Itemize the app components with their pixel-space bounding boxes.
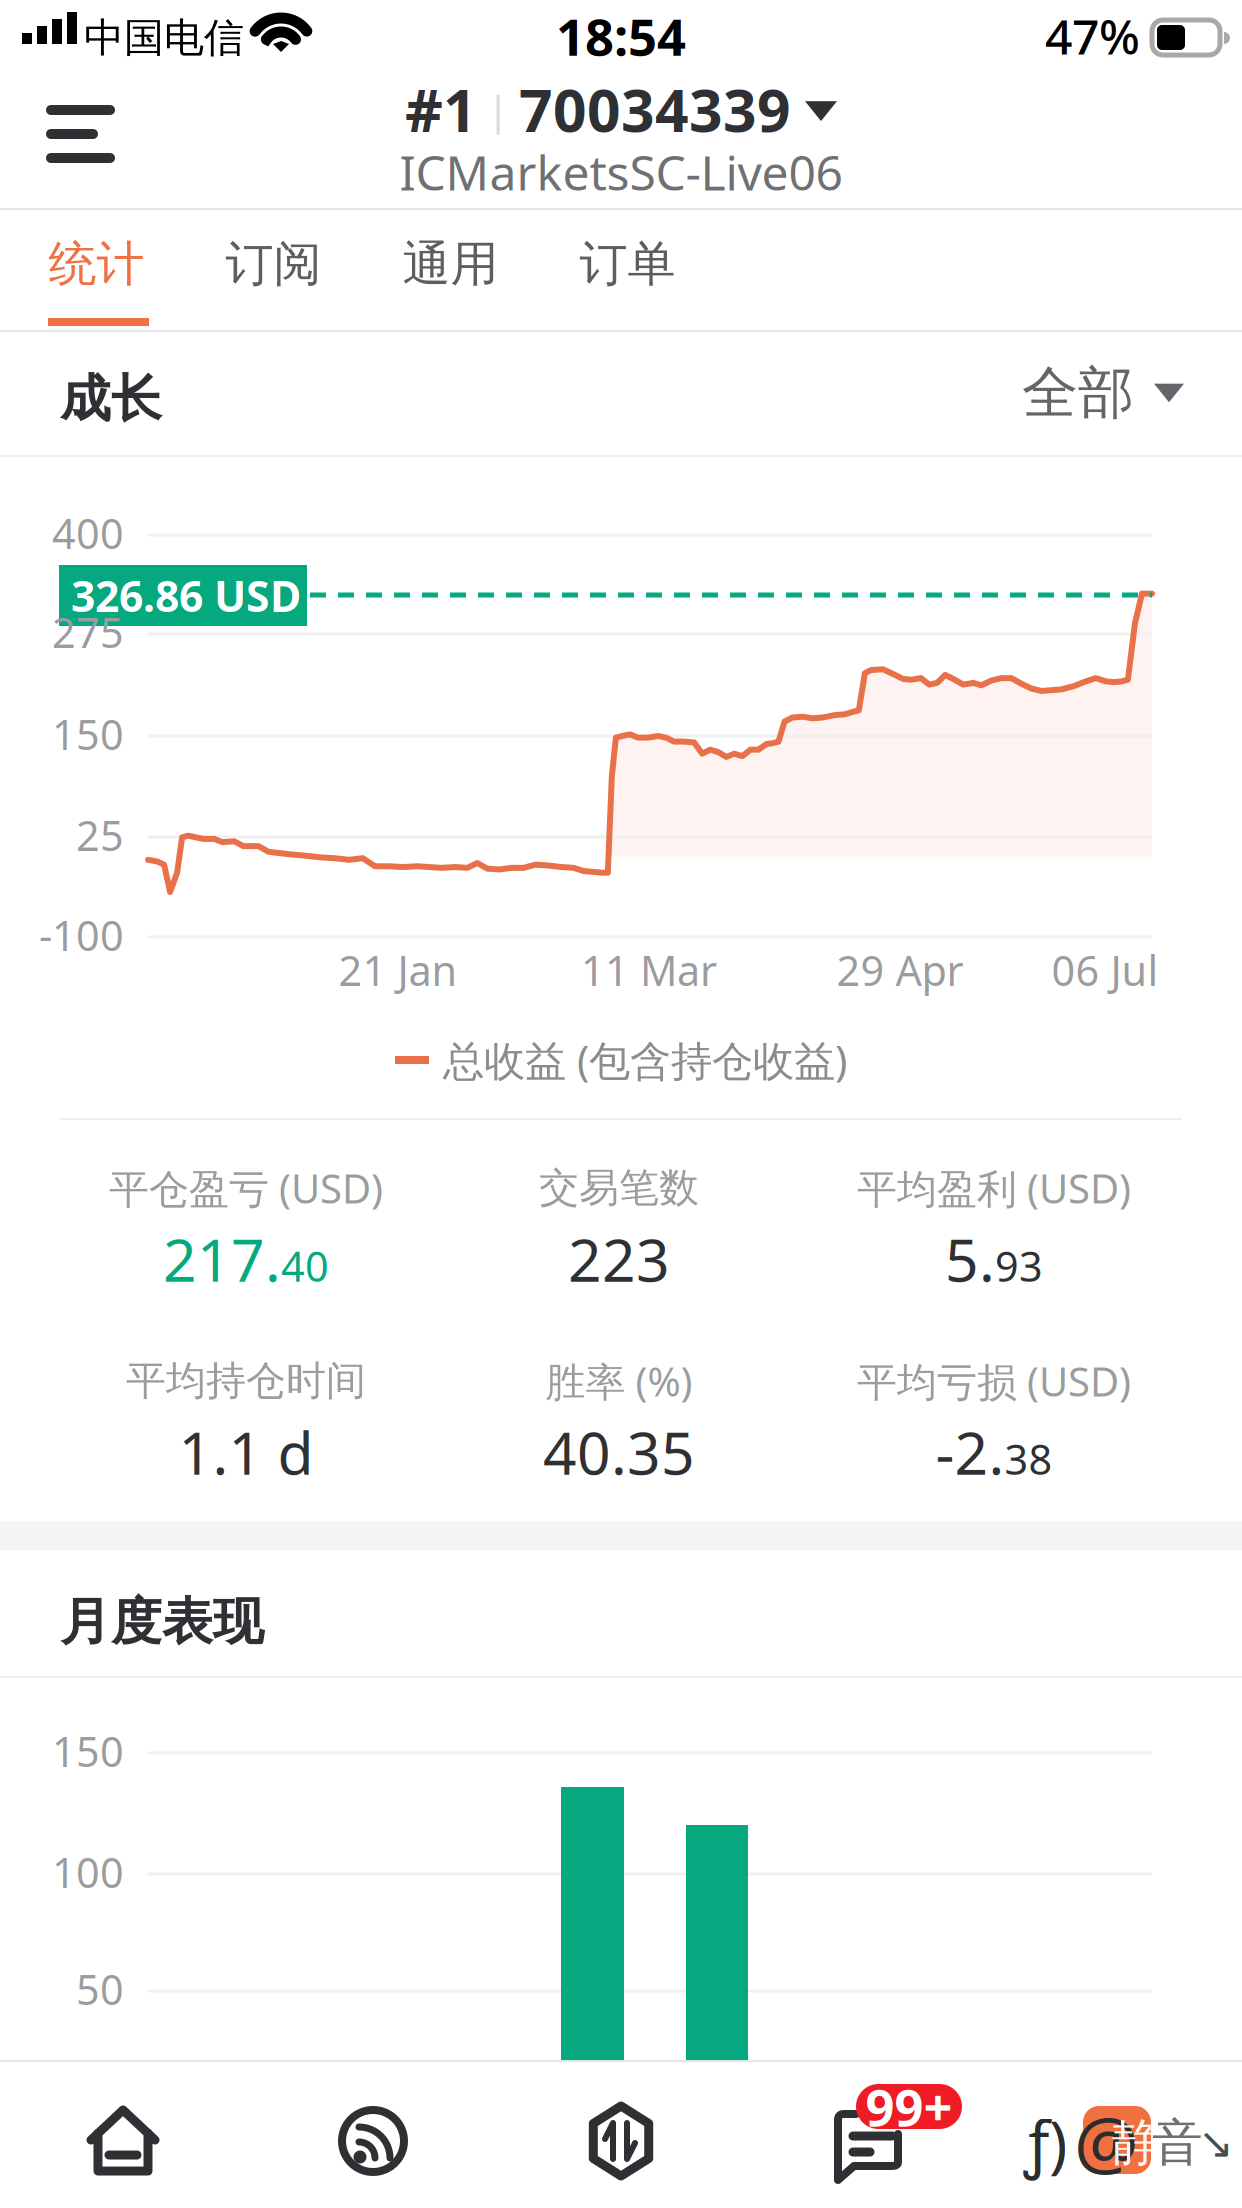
button[interactable]: Trade — [497, 2062, 745, 2208]
staticText: 1.1 d — [178, 1413, 313, 1491]
staticText: 223 — [568, 1220, 670, 1298]
staticText: -100 — [39, 908, 124, 962]
staticText: 平均持仓时间 — [126, 1356, 366, 1405]
staticText: 成长 — [60, 368, 162, 430]
staticText: 38 — [1004, 1431, 1052, 1486]
staticText: 静 — [1112, 2112, 1163, 2174]
staticText: 平均亏损 (USD) — [857, 1354, 1131, 1407]
staticText: 150 — [52, 1724, 124, 1778]
staticText: 11 Mar — [581, 943, 717, 997]
staticText: 275 — [52, 605, 124, 659]
staticText: 217. — [163, 1220, 281, 1298]
button[interactable]: 通用 — [362, 216, 539, 312]
staticText: #1 — [405, 70, 477, 148]
staticText: 47% — [1045, 4, 1140, 68]
button[interactable]: Messages — [745, 2062, 993, 2208]
button[interactable]: 统计 — [8, 216, 185, 312]
staticText: @ — [1074, 2093, 1139, 2189]
staticText: 50 — [76, 1962, 124, 2016]
button[interactable]: 订单 — [539, 216, 716, 312]
staticText: 5. — [945, 1220, 995, 1298]
staticText: 40 — [281, 1238, 329, 1293]
staticText: 平仓盈亏 (USD) — [109, 1161, 383, 1214]
staticText: -2. — [935, 1413, 1004, 1491]
staticText: | — [477, 83, 519, 136]
staticText: 29 Apr — [836, 943, 963, 997]
staticText: 订单 — [579, 234, 675, 293]
staticText: 订阅 — [225, 234, 321, 293]
staticText: 150 — [52, 707, 124, 761]
staticText: 99+ — [865, 2073, 952, 2140]
button[interactable]: Menu — [10, 75, 150, 195]
staticText: 40.35 — [543, 1413, 695, 1491]
staticText: 胜率 (%) — [545, 1354, 692, 1407]
staticText: 70034339 — [519, 70, 791, 148]
staticText: 100 — [52, 1845, 124, 1899]
staticText: 93 — [995, 1238, 1043, 1293]
staticText: 音 — [1152, 2112, 1203, 2174]
staticText: ƒ) — [1024, 2101, 1067, 2183]
staticText: 18:54 — [556, 2, 686, 70]
staticText: ICMarketsSC-Live06 — [399, 140, 842, 204]
staticText: 400 — [52, 506, 124, 560]
staticText: 21 Jan — [338, 943, 457, 997]
button[interactable]: More — [993, 2062, 1241, 2208]
button[interactable]: 订阅 — [185, 216, 362, 312]
staticText: 交易笔数 — [539, 1163, 699, 1212]
staticText: 通用 — [402, 234, 498, 293]
staticText: 平均盈利 (USD) — [857, 1161, 1131, 1214]
staticText: 全部 — [1022, 359, 1134, 427]
staticText: 06 Jul — [1051, 943, 1158, 997]
button[interactable]: 全部 — [994, 355, 1184, 431]
button[interactable]: #1 — [241, 82, 1001, 204]
staticText: 总收益 (包含持仓收益) — [443, 1033, 847, 1087]
staticText: 326.86 USD — [71, 567, 301, 624]
button[interactable]: Signals — [249, 2062, 497, 2208]
staticText: ↘ — [1198, 2119, 1234, 2167]
staticText: 月度表现 — [60, 1591, 264, 1653]
staticText: 中国电信 — [84, 13, 244, 62]
button[interactable]: Home — [1, 2062, 249, 2208]
staticText: 统计 — [48, 234, 144, 293]
staticText: 25 — [76, 808, 124, 862]
